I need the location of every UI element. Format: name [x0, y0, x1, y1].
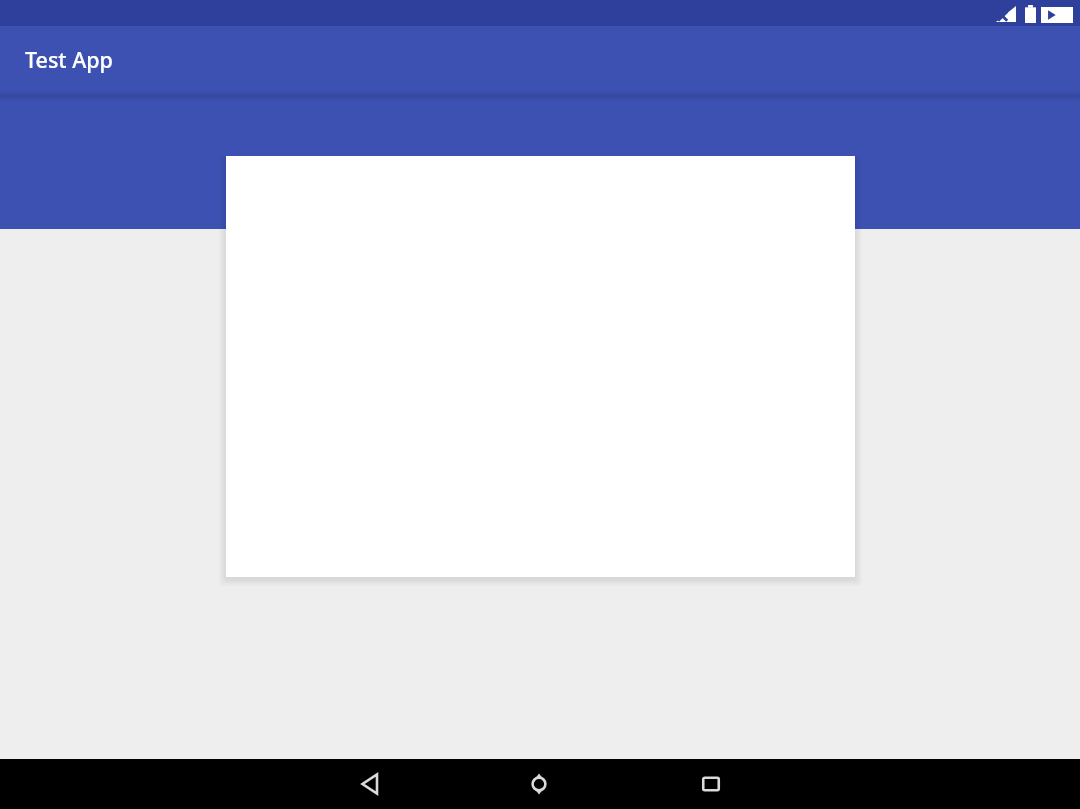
- button[interactable]: Recent apps: [686, 760, 736, 808]
- staticText: Test App: [25, 45, 113, 74]
- button[interactable]: Home: [514, 760, 564, 808]
- button[interactable]: Back: [346, 760, 396, 808]
